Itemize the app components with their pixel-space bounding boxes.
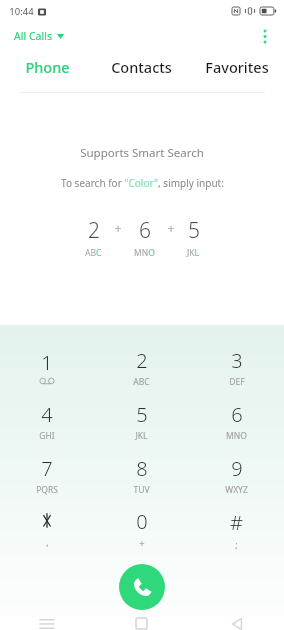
- button[interactable]: Back: [189, 617, 284, 630]
- button[interactable]: 2: [94, 340, 189, 394]
- button[interactable]: Favorites: [189, 49, 284, 85]
- staticText: 6: [139, 216, 151, 245]
- staticText: 8: [136, 455, 148, 482]
- staticText: +: [167, 220, 175, 237]
- staticText: MNO: [226, 430, 247, 442]
- button[interactable]: 6: [189, 394, 284, 448]
- button[interactable]: 4: [0, 394, 94, 448]
- button[interactable]: Recent apps: [0, 617, 94, 630]
- staticText: ABC: [85, 247, 102, 259]
- staticText: 1: [41, 349, 53, 376]
- button[interactable]: 0: [94, 502, 189, 556]
- button[interactable]: 9: [189, 448, 284, 502]
- button[interactable]: Phone: [0, 49, 94, 85]
- button[interactable]: 8: [94, 448, 189, 502]
- staticText: To search for "Color", simply input:: [61, 176, 224, 190]
- staticText: JKL: [187, 247, 200, 259]
- staticText: WXYZ: [225, 484, 248, 496]
- staticText: PQRS: [36, 484, 58, 496]
- staticText: 2: [136, 347, 148, 374]
- staticText: TUV: [133, 484, 150, 496]
- staticText: 0: [136, 508, 148, 535]
- button[interactable]: More options: [252, 23, 278, 49]
- staticText: #: [230, 509, 243, 536]
- staticText: Contacts: [111, 57, 172, 77]
- staticText: 9: [231, 455, 243, 482]
- staticText: ,: [46, 536, 49, 548]
- button[interactable]: 1: [0, 340, 94, 394]
- staticText: 2: [88, 216, 100, 245]
- button[interactable]: Contacts: [94, 49, 189, 85]
- button[interactable]: Home: [94, 617, 189, 630]
- staticText: 3: [231, 347, 243, 374]
- staticText: 4: [41, 401, 53, 428]
- staticText: +: [114, 220, 122, 237]
- button[interactable]: 7: [0, 448, 94, 502]
- staticText: Favorites: [205, 57, 269, 77]
- staticText: 10:44: [9, 5, 34, 18]
- staticText: DEF: [229, 376, 245, 388]
- staticText: Phone: [25, 57, 70, 77]
- staticText: +: [139, 537, 145, 550]
- staticText: Supports Smart Search: [80, 145, 204, 161]
- staticText: GHI: [39, 430, 55, 442]
- staticText: ABC: [133, 376, 150, 388]
- button[interactable]: 5: [94, 394, 189, 448]
- button[interactable]: #: [189, 502, 284, 556]
- staticText: JKL: [135, 430, 148, 442]
- button[interactable]: ,: [0, 502, 94, 556]
- button[interactable]: 3: [189, 340, 284, 394]
- staticText: ;: [235, 538, 238, 550]
- staticText: MNO: [134, 247, 155, 259]
- staticText: 5: [136, 401, 148, 428]
- staticText: All Calls: [14, 29, 52, 43]
- button[interactable]: All Calls: [10, 26, 68, 46]
- staticText: 7: [41, 455, 53, 482]
- staticText: 5: [188, 216, 200, 245]
- staticText: 6: [231, 401, 243, 428]
- button[interactable]: Call: [119, 564, 165, 610]
